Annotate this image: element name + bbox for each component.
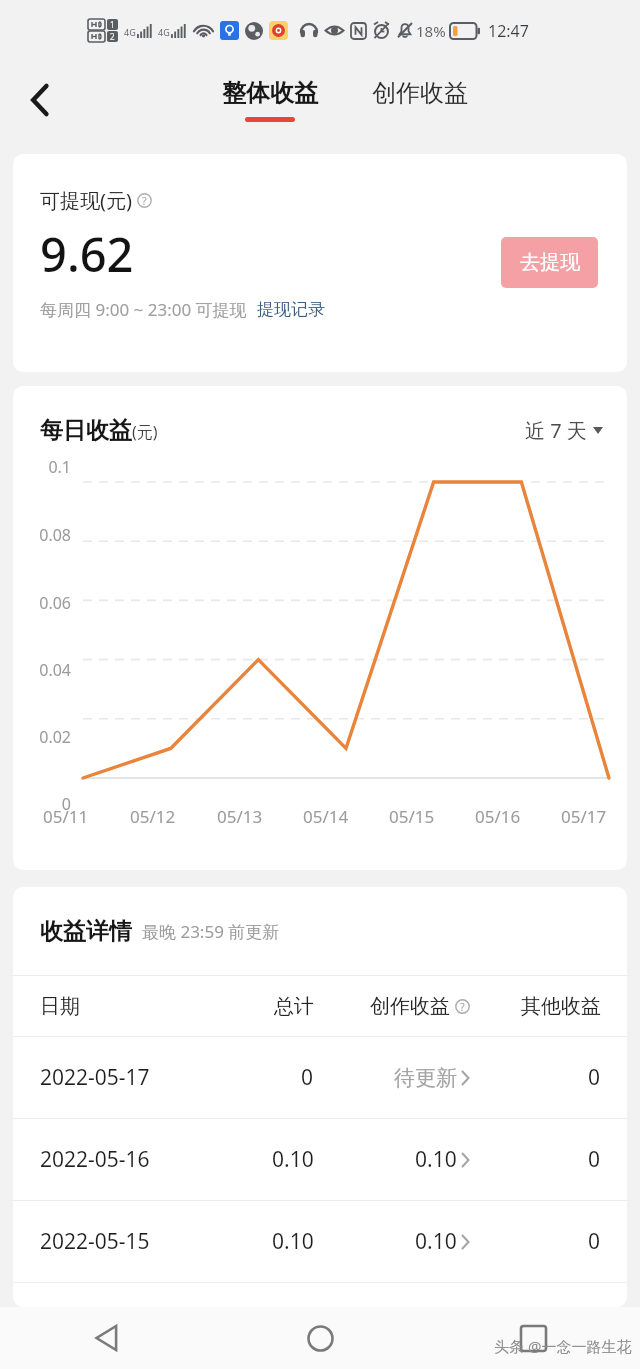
- staticText: 0.02: [13, 726, 71, 748]
- staticText: 每日收益: [40, 416, 132, 445]
- staticText: 去提现: [520, 250, 580, 275]
- staticText: 18%: [416, 21, 446, 41]
- button[interactable]: 近 7 天: [525, 417, 603, 444]
- button[interactable]: Back: [14, 74, 66, 126]
- staticText: 05/12: [130, 805, 176, 828]
- button[interactable]: Back: [0, 1307, 214, 1369]
- staticText: 每周四 9:00 ~ 23:00 可提现: [40, 298, 247, 321]
- staticText: 0: [588, 1063, 601, 1092]
- staticText: 2022-05-16: [40, 1145, 150, 1174]
- staticText: 0.1: [13, 456, 71, 478]
- staticText: 创作收益: [370, 994, 450, 1019]
- staticText: 05/13: [217, 805, 263, 828]
- staticText: (元): [132, 421, 158, 443]
- staticText: 05/11: [43, 805, 89, 828]
- button[interactable]: Recents: [427, 1307, 640, 1369]
- staticText: 0.10: [272, 1227, 314, 1256]
- staticText: 2022-05-15: [40, 1227, 150, 1256]
- staticText: 可提现(元): [40, 187, 132, 214]
- staticText: 0.10: [272, 1145, 314, 1174]
- staticText: 近 7 天: [525, 417, 587, 444]
- staticText: 4G: [124, 26, 136, 38]
- button[interactable]: 创作收益: [366, 85, 474, 115]
- staticText: 0.06: [13, 592, 71, 614]
- staticText: 头条 @一念一路生花: [494, 1336, 632, 1356]
- staticText: 待更新: [394, 1065, 457, 1091]
- staticText: 整体收益: [222, 78, 318, 108]
- staticText: 05/15: [389, 805, 435, 828]
- staticText: 0: [588, 1145, 601, 1174]
- staticText: 0.08: [13, 524, 71, 546]
- staticText: 12:47: [488, 20, 529, 42]
- staticText: 日期: [40, 994, 80, 1019]
- staticText: 0.04: [13, 659, 71, 681]
- staticText: 提现记录: [257, 299, 325, 320]
- staticText: ?: [142, 193, 147, 208]
- staticText: 收益详情: [40, 917, 132, 946]
- staticText: 2022-05-17: [40, 1063, 150, 1092]
- staticText: ?: [460, 999, 465, 1014]
- button[interactable]: 整体收益: [216, 78, 324, 122]
- button[interactable]: 2022-05-15: [13, 1201, 627, 1282]
- staticText: 0.10: [415, 1227, 457, 1256]
- staticText: 05/17: [561, 805, 607, 828]
- staticText: 0: [588, 1227, 601, 1256]
- staticText: 1: [110, 19, 115, 30]
- staticText: 05/14: [303, 805, 349, 828]
- staticText: 创作收益: [372, 78, 468, 108]
- staticText: 其他收益: [521, 994, 601, 1019]
- staticText: 最晚 23:59 前更新: [142, 920, 280, 943]
- button[interactable]: 2022-05-17: [13, 1037, 627, 1118]
- staticText: 0.10: [415, 1145, 457, 1174]
- staticText: 05/16: [475, 805, 521, 828]
- button[interactable]: 去提现: [501, 237, 598, 288]
- button[interactable]: Home: [214, 1307, 427, 1369]
- staticText: 9.62: [40, 222, 134, 286]
- button[interactable]: 2022-05-16: [13, 1119, 627, 1200]
- button[interactable]: 提现记录: [257, 299, 325, 320]
- staticText: 4G: [158, 26, 170, 38]
- staticText: 0: [13, 793, 71, 815]
- staticText: 2: [110, 31, 115, 42]
- staticText: 总计: [274, 994, 314, 1019]
- staticText: 0: [301, 1063, 314, 1092]
